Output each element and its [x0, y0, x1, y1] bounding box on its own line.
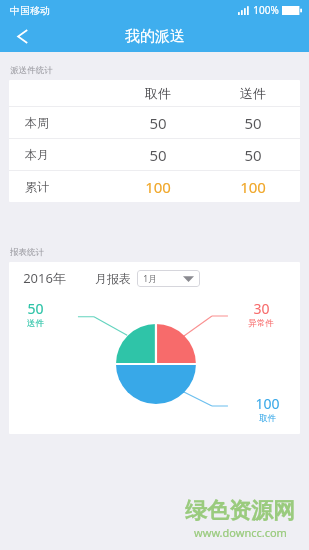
button[interactable]: 累计 [9, 171, 300, 202]
staticText: 100 [145, 177, 171, 197]
staticText: 报表统计 [10, 247, 44, 258]
staticText: 100% [253, 3, 279, 17]
button[interactable]: 本周 [9, 107, 300, 138]
staticText: 取件 [259, 413, 276, 424]
button[interactable]: 1月 [137, 270, 200, 287]
staticText: 1月 [143, 273, 157, 285]
staticText: 绿色资源网 [185, 497, 295, 525]
button[interactable]: 取件 [9, 80, 300, 106]
staticText: 100 [240, 177, 266, 197]
staticText: 50 [244, 113, 262, 133]
staticText: 送件 [27, 318, 44, 329]
staticText: 2016年 [23, 269, 66, 287]
staticText: 我的派送 [125, 27, 185, 46]
staticText: 累计 [25, 179, 49, 194]
staticText: 30 [253, 299, 270, 318]
staticText: 本月 [25, 147, 49, 162]
staticText: 中国移动 [10, 4, 50, 17]
button[interactable]: Back [6, 20, 40, 52]
button[interactable]: 本月 [9, 139, 300, 170]
staticText: 送件 [240, 85, 266, 101]
staticText: 50 [244, 145, 262, 165]
staticText: 50 [149, 145, 167, 165]
staticText: 月报表 [95, 271, 131, 286]
staticText: 50 [27, 299, 44, 318]
staticText: 本周 [25, 115, 49, 130]
staticText: 100 [255, 394, 280, 413]
staticText: 派送件统计 [10, 65, 53, 76]
staticText: 50 [149, 113, 167, 133]
staticText: www.downcc.com [194, 525, 287, 540]
staticText: 取件 [145, 85, 171, 101]
staticText: 异常件 [248, 318, 274, 329]
